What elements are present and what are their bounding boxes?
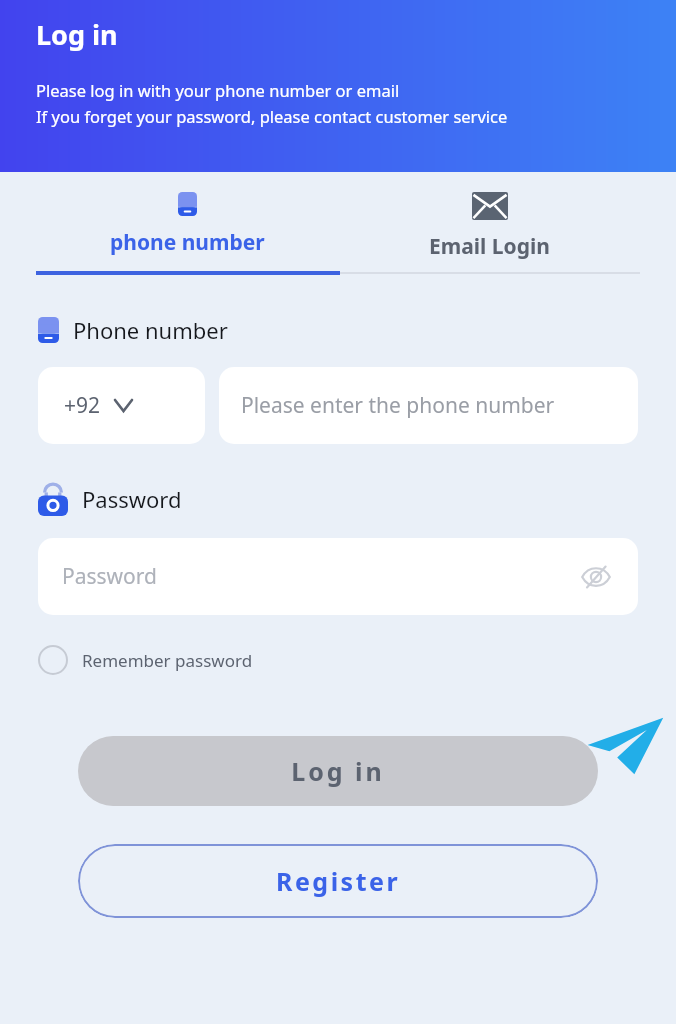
staticText: Email Login: [429, 232, 550, 261]
button[interactable]: Register: [78, 844, 598, 918]
staticText: Register: [276, 864, 401, 898]
button[interactable]: Please enter the phone number: [219, 367, 638, 444]
button[interactable]: Show password: [578, 559, 614, 595]
staticText: Phone number: [73, 315, 228, 345]
staticText: +92: [64, 391, 101, 420]
button[interactable]: Remember password: [36, 639, 255, 681]
staticText: Remember password: [82, 649, 253, 672]
button[interactable]: Email Login: [338, 172, 640, 271]
staticText: Please log in with your phone number or …: [36, 79, 400, 101]
staticText: Log in: [36, 16, 118, 53]
button[interactable]: phone number: [36, 172, 338, 267]
button[interactable]: Password: [38, 538, 638, 615]
staticText: Please enter the phone number: [241, 391, 555, 420]
button[interactable]: Log in: [78, 736, 598, 806]
button[interactable]: +92: [38, 367, 205, 444]
staticText: Password: [62, 562, 157, 591]
staticText: If you forget your password, please cont…: [36, 105, 508, 127]
staticText: Log in: [291, 754, 385, 788]
button[interactable]: Telegram support: [586, 714, 664, 776]
staticText: phone number: [110, 228, 265, 257]
staticText: Password: [82, 484, 182, 514]
